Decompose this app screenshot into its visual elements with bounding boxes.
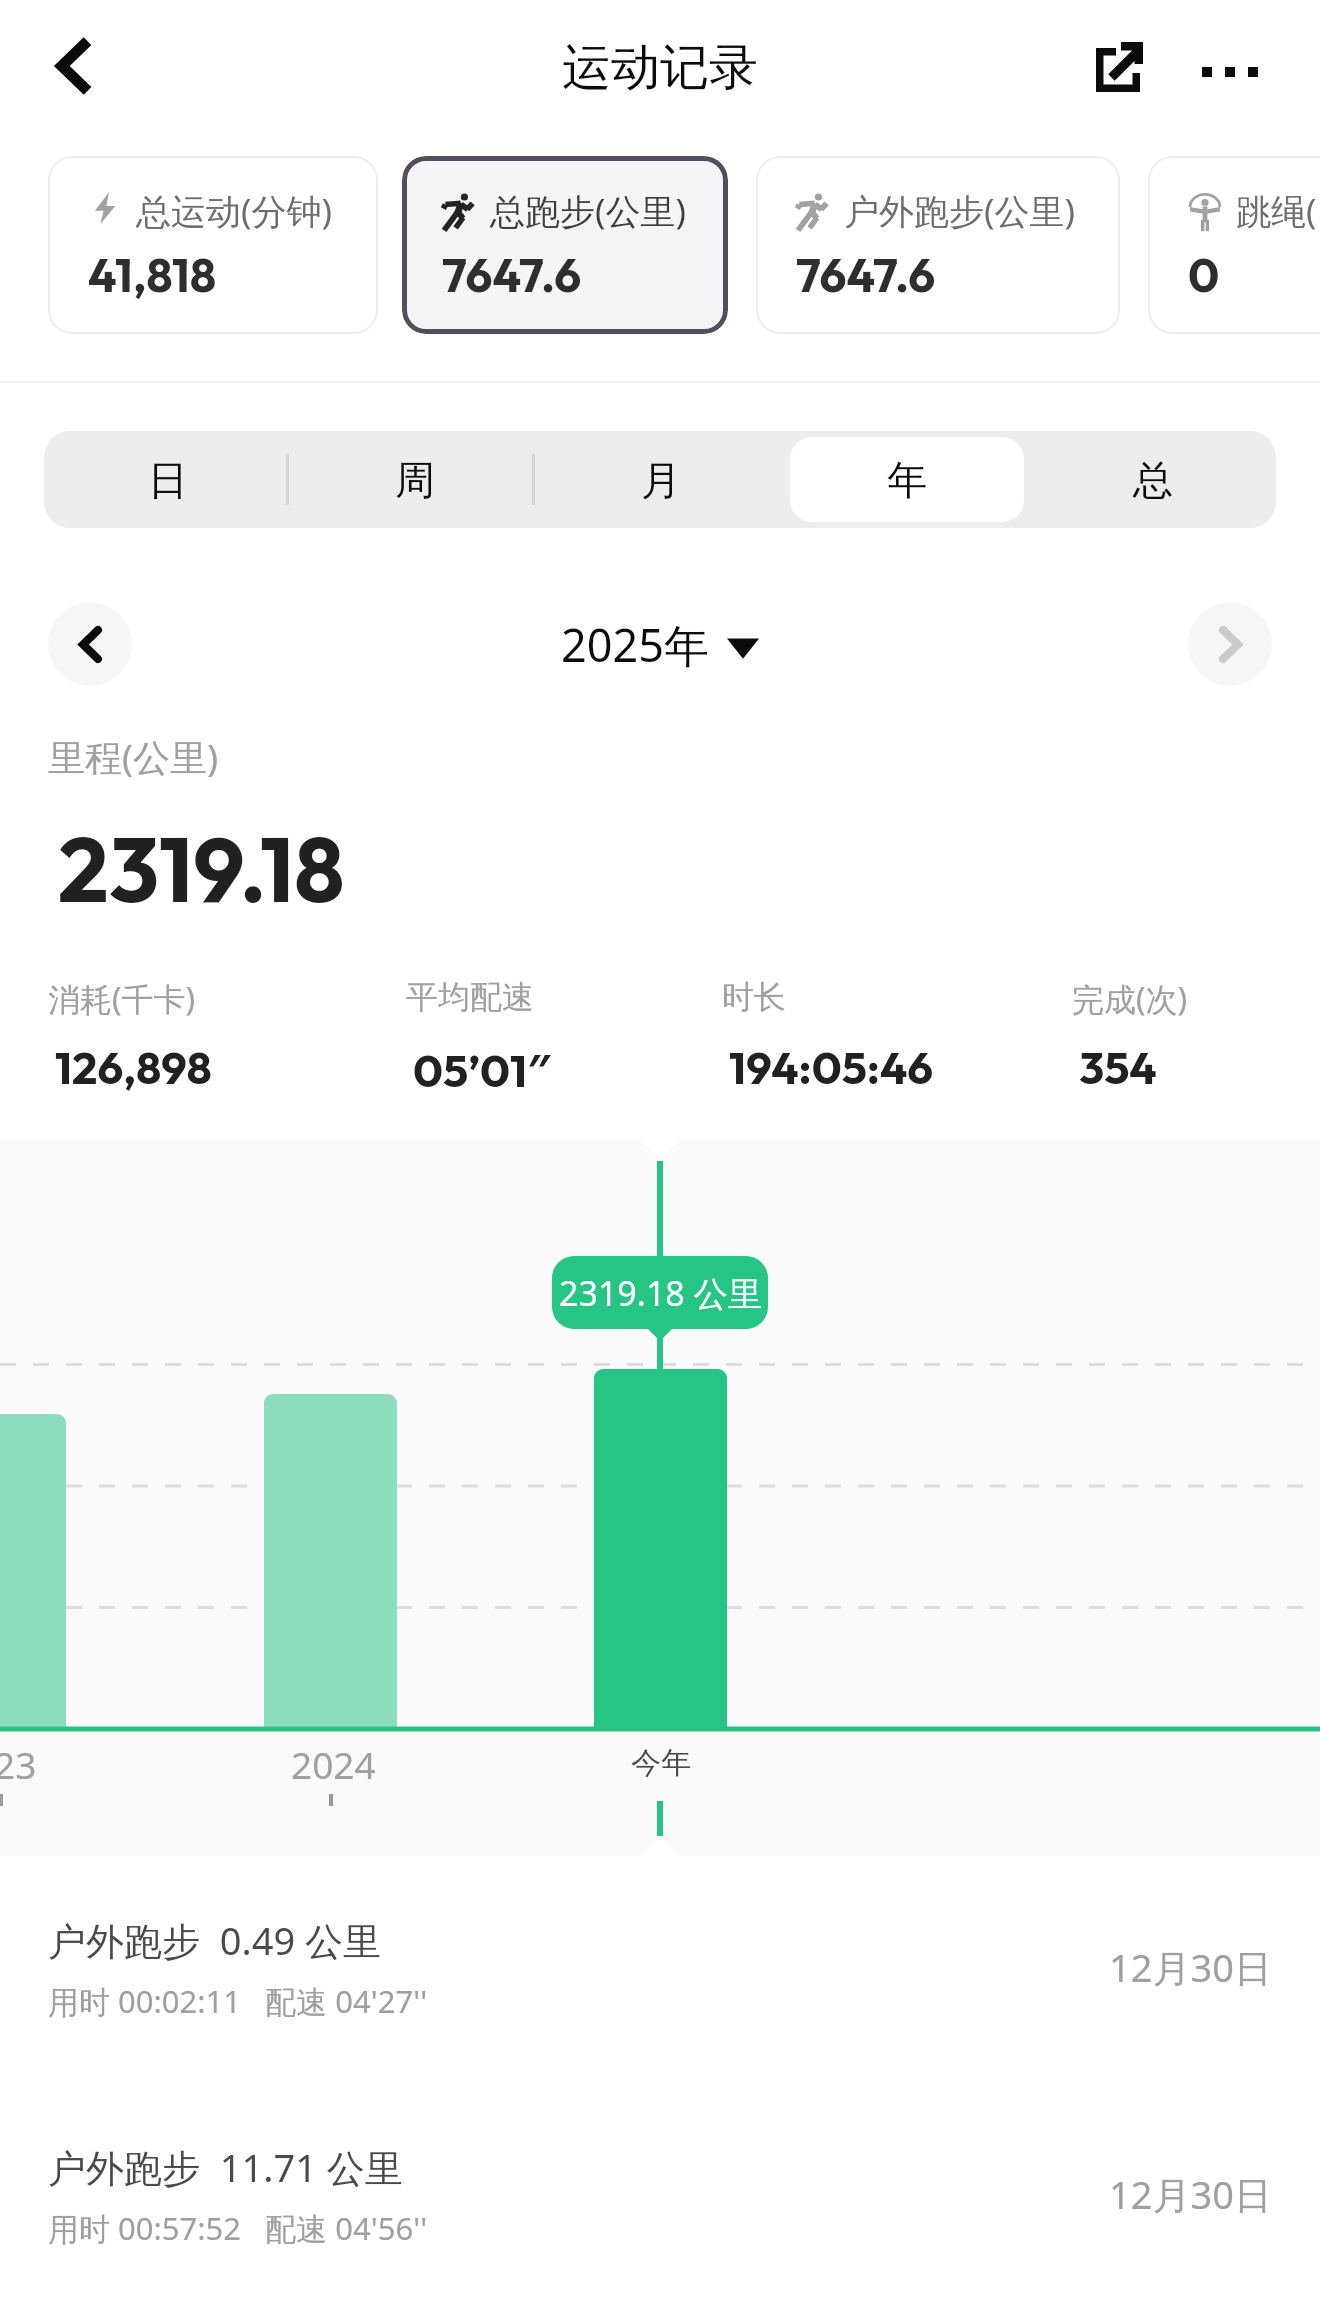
staticText: 2319.18 公里 [559,1270,762,1316]
staticText: 户外跑步(公里) [844,187,1076,235]
staticText: 年 [887,455,927,505]
staticText: 0 [1188,245,1220,304]
staticText: 消耗(千卡) [48,977,196,1021]
staticText: 用时 00:02:11 配速 04'27'' [48,1980,428,2022]
staticText: 完成(次) [1072,977,1188,1021]
button[interactable]: More options [1180,22,1280,122]
staticText: 户外跑步 0.49 公里 [48,1914,382,1966]
button[interactable]: 年 [790,437,1024,522]
button[interactable]: 周 [297,437,532,522]
button[interactable]: 总跑步(公里) [402,156,728,334]
staticText: 05’01″ [413,1039,551,1100]
button[interactable]: 日 [50,437,285,522]
button[interactable]: 户外跑步 0.49 公里 [0,1856,1320,2083]
staticText: 跳绳( [1236,187,1317,235]
staticText: 23 [0,1739,37,1789]
staticText: 12月30日 [1109,1941,1272,1993]
staticText: 平均配速 [406,977,534,1017]
staticText: 354 [1079,1039,1157,1096]
button[interactable]: Next year [1188,602,1272,686]
button[interactable]: Previous year [48,602,132,686]
button[interactable]: Share [1076,22,1166,112]
staticText: 月 [641,455,681,505]
button[interactable]: 户外跑步 11.71 公里 [0,2083,1320,2310]
staticText: 日 [148,455,188,505]
staticText: 用时 00:57:52 配速 04'56'' [48,2207,428,2249]
button[interactable]: Back [25,18,121,114]
staticText: 总运动(分钟) [136,187,333,235]
button[interactable]: 总 [1036,437,1270,522]
staticText: 2024 [291,1739,376,1789]
button[interactable]: 月 [544,437,778,522]
button[interactable]: 跳绳( [1148,156,1320,334]
staticText: 总 [1133,455,1173,505]
staticText: 2025年 [561,614,709,675]
staticText: 7647.6 [796,245,936,304]
staticText: 时长 [722,977,786,1017]
staticText: 周 [395,455,435,505]
button[interactable]: 户外跑步(公里) [756,156,1120,334]
staticText: 12月30日 [1109,2168,1272,2220]
button[interactable]: 2025年 [561,614,759,675]
staticText: 41,818 [88,245,217,304]
staticText: 194:05:46 [729,1039,934,1096]
staticText: 126,898 [55,1039,212,1096]
staticText: 今年 [631,1744,691,1782]
staticText: 户外跑步 11.71 公里 [48,2141,403,2193]
staticText: 总跑步(公里) [490,187,687,235]
button[interactable]: 总运动(分钟) [48,156,378,334]
staticText: 7647.6 [442,245,582,304]
staticText: 2319.18 [58,812,345,925]
staticText: 里程(公里) [48,731,219,782]
staticText: 运动记录 [562,37,758,99]
